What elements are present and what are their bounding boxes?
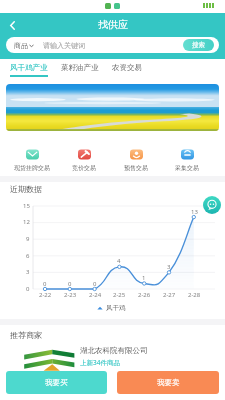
staticText: 6 [26,252,30,260]
button[interactable]: 湖北农科院有限公司 [8,344,217,374]
staticText: 12 [23,218,30,226]
staticText: 2-28 [188,291,201,299]
staticText: 15 [23,202,30,210]
staticText: 风干鸡 [106,304,126,312]
staticText: 我要卖 [157,378,180,387]
staticText: 2-26 [138,291,151,299]
staticText: 上新34件商品 [80,358,120,367]
staticText: 风干鸡产业 [10,63,48,72]
button[interactable]: 预售交易 [110,148,162,172]
staticText: 竞价交易 [72,164,96,172]
staticText: 请输入关键词 [43,41,85,50]
staticText: 2-27 [163,291,176,299]
button[interactable]: 农资交易 [112,63,142,77]
staticText: 0 [43,280,47,288]
staticText: 9 [26,235,30,243]
staticText: 现货挂牌交易 [14,164,50,172]
staticText: 商品 [14,41,28,50]
button[interactable]: 风干鸡产业 [10,63,48,77]
button[interactable]: 我要卖 [117,371,219,394]
staticText: 2-23 [64,291,77,299]
staticText: 湖北农科院有限公司 [80,346,148,355]
button[interactable]: 竞价交易 [58,148,110,172]
staticText: 3 [26,268,30,276]
staticText: 搜索 [192,41,205,49]
button[interactable]: 商品 [6,37,219,53]
staticText: 3 [167,263,171,271]
button[interactable]: Customer service chat [203,196,221,214]
staticText: 13 [191,208,198,216]
staticText: 0 [68,280,72,288]
staticText: 2-24 [89,291,102,299]
button[interactable]: 采集交易 [161,148,213,172]
button[interactable]: 搜索 [183,39,214,51]
staticText: 近期数据 [10,184,42,194]
staticText: 推荐商家 [10,330,42,340]
staticText: 2-22 [39,291,52,299]
button[interactable]: 菜籽油产业 [61,63,99,77]
button[interactable]: 我要买 [6,371,107,394]
staticText: 0 [93,280,97,288]
staticText: 4 [117,257,121,265]
staticText: 预售交易 [124,164,148,172]
staticText: 菜籽油产业 [61,63,99,72]
button[interactable] [6,84,219,131]
staticText: 2-25 [113,291,126,299]
staticText: 采集交易 [175,164,199,172]
staticText: 0 [26,285,30,293]
staticText: 我要买 [45,378,68,387]
staticText: 农资交易 [112,63,142,72]
button[interactable]: Back [3,16,21,34]
staticText: 1 [142,274,146,282]
button[interactable]: 现货挂牌交易 [6,148,58,172]
staticText: 找供应 [98,18,128,31]
